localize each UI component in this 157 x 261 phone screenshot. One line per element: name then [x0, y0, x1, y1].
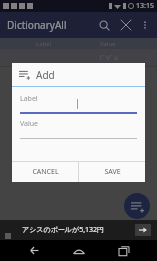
button[interactable]: Close	[115, 14, 137, 36]
staticText: Add	[36, 68, 55, 82]
button[interactable]: (ﾟ∀ﾟ)ﾉ	[0, 49, 157, 66]
staticText: CANCEL	[32, 167, 59, 177]
staticText: SAVE	[104, 167, 121, 177]
staticText: Value	[100, 40, 116, 48]
button[interactable]: Search	[93, 14, 115, 36]
button[interactable]: Back	[20, 240, 46, 261]
button[interactable]: Add entry	[124, 193, 150, 219]
staticText: Value	[20, 119, 39, 129]
button[interactable]: Recents	[111, 240, 137, 261]
button[interactable]: SAVE	[79, 162, 145, 182]
button[interactable]: More options	[137, 17, 153, 33]
staticText: DictionaryAll	[7, 18, 67, 32]
staticText: 13:15	[136, 1, 154, 11]
staticText: (ﾟ∀ﾟ)ﾉ	[99, 54, 119, 62]
staticText: アシスのボールが5,132円	[22, 225, 105, 235]
staticText: Label	[36, 40, 52, 48]
staticText: Label	[20, 94, 38, 104]
button[interactable]: Home	[66, 240, 92, 261]
button[interactable]: CANCEL	[12, 162, 78, 182]
button[interactable]: Open ad	[135, 224, 151, 236]
